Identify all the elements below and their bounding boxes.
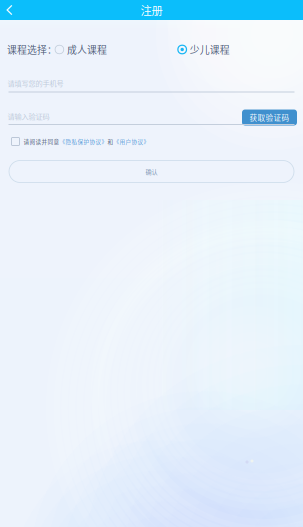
staticText: 请填写您的手机号 bbox=[7, 78, 63, 88]
button[interactable]: 确认 bbox=[9, 160, 294, 182]
staticText: 请输入验证码 bbox=[7, 111, 49, 121]
staticText: 《隐私保护协议》 bbox=[59, 137, 107, 145]
button[interactable]: Back bbox=[0, 0, 19, 20]
staticText: 《用户协议》 bbox=[113, 137, 149, 145]
staticText: 课程选择： bbox=[7, 42, 57, 57]
button[interactable]: 《隐私保护协议》 bbox=[59, 137, 107, 145]
staticText: 成人课程 bbox=[67, 42, 107, 57]
staticText: 少儿课程 bbox=[190, 42, 230, 57]
staticText: 请阅读并同意 bbox=[23, 137, 59, 145]
staticText: 获取验证码 bbox=[249, 112, 289, 123]
staticText: 和 bbox=[107, 137, 113, 145]
button[interactable]: 《用户协议》 bbox=[113, 137, 149, 145]
button[interactable]: 少儿课程 bbox=[178, 42, 230, 56]
button[interactable]: 成人课程 bbox=[55, 42, 107, 56]
button[interactable]: 获取验证码 bbox=[242, 109, 297, 125]
staticText: 确认 bbox=[145, 167, 157, 176]
staticText: 注册 bbox=[140, 2, 162, 18]
button[interactable]: Agree to the agreements bbox=[11, 137, 19, 145]
